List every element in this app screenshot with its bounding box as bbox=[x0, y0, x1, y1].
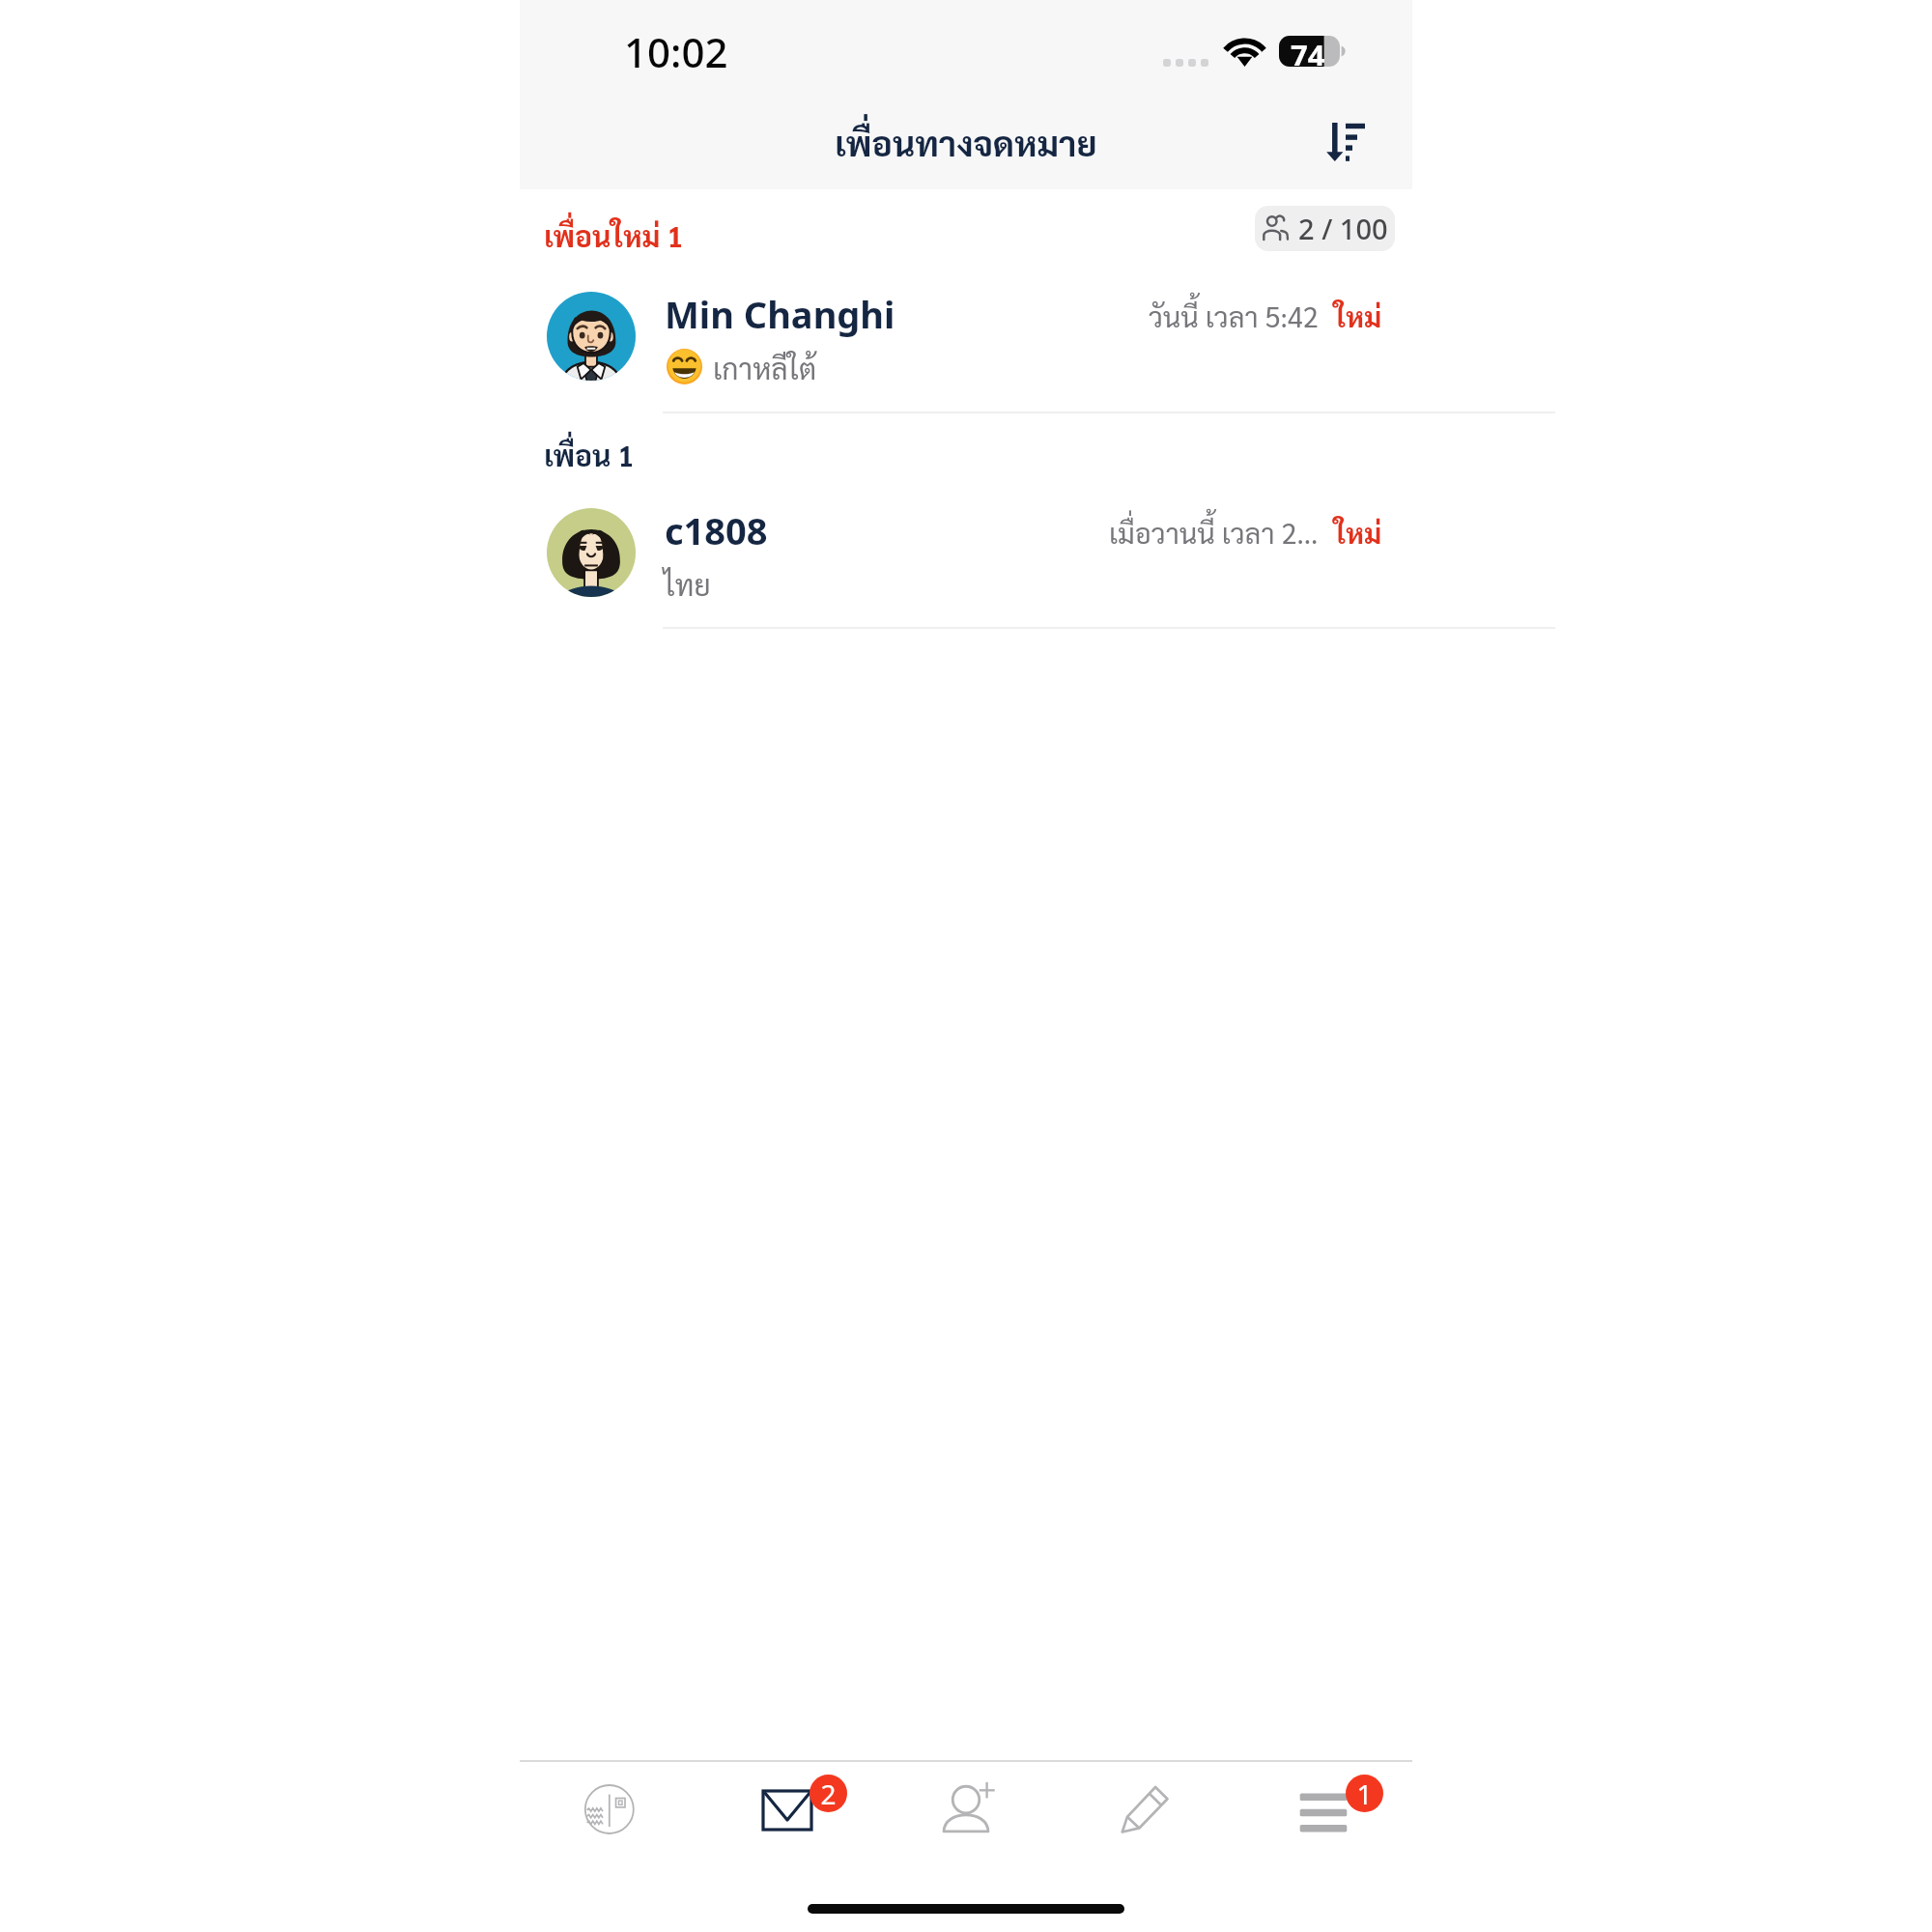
button[interactable]: Min Changhi bbox=[520, 269, 1412, 412]
staticText: 2 / 100 bbox=[1298, 210, 1388, 247]
staticText: ไทย bbox=[664, 565, 711, 603]
button[interactable]: c1808 bbox=[520, 485, 1412, 627]
button[interactable]: Add friend bbox=[876, 1762, 1055, 1862]
staticText: Min Changhi bbox=[665, 289, 895, 339]
staticText: 2 bbox=[820, 1776, 837, 1812]
staticText: ใหม่ bbox=[1334, 298, 1382, 334]
button[interactable]: Stamps bbox=[520, 1762, 697, 1862]
staticText: 1 bbox=[1356, 1776, 1373, 1812]
staticText: c1808 bbox=[665, 505, 768, 555]
staticText: เมื่อวานนี้ เวลา 2... bbox=[1109, 514, 1319, 551]
button[interactable]: Compose bbox=[1055, 1762, 1234, 1862]
staticText: เพื่อนทางจดหมาย bbox=[835, 120, 1097, 165]
button[interactable]: Menu bbox=[1234, 1762, 1412, 1862]
staticText: เพื่อน 1 bbox=[544, 436, 635, 473]
staticText: 74 bbox=[1291, 35, 1325, 66]
button[interactable]: 2 / 100 bbox=[1255, 206, 1395, 251]
staticText: วันนี้ เวลา 5:42 bbox=[1149, 298, 1319, 334]
button[interactable]: Sort bbox=[1295, 93, 1396, 191]
staticText: ใหม่ bbox=[1334, 514, 1382, 551]
staticText: เกาหลีใต้ bbox=[713, 349, 817, 386]
staticText: เพื่อนใหม่ 1 bbox=[544, 216, 684, 254]
button[interactable]: Mail bbox=[697, 1762, 876, 1862]
staticText: 10:02 bbox=[624, 24, 728, 79]
